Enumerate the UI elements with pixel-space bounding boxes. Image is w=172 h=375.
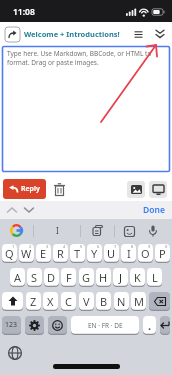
button[interactable]: Type here. Use Markdown, BBCode, or HTML… — [2, 46, 170, 172]
staticText: Reply — [21, 184, 40, 194]
staticText: Type here. Use Markdown, BBCode, or HTML… — [7, 49, 166, 67]
button[interactable]: J — [113, 268, 128, 287]
staticText: H — [99, 270, 108, 285]
staticText: F — [66, 270, 72, 285]
staticText: 7 — [114, 244, 117, 249]
staticText: U — [107, 246, 116, 261]
button[interactable] — [48, 316, 67, 335]
staticText: 3 — [46, 244, 49, 249]
button[interactable]: E — [36, 244, 51, 263]
staticText: T — [74, 246, 81, 261]
staticText: EN · FR · DE — [88, 321, 123, 330]
staticText: P — [159, 246, 166, 261]
button[interactable] — [54, 183, 65, 196]
button[interactable]: C — [61, 292, 76, 311]
button[interactable]: R — [53, 244, 68, 263]
button[interactable] — [24, 206, 34, 214]
staticText: Q — [5, 246, 14, 261]
staticText: N — [117, 294, 126, 309]
button[interactable]: Done — [143, 204, 172, 216]
button[interactable] — [149, 225, 157, 237]
staticText: G — [82, 270, 91, 285]
staticText: E — [40, 246, 47, 261]
staticText: 4 — [63, 244, 66, 249]
staticText: 2 — [29, 244, 32, 249]
button[interactable] — [25, 316, 44, 335]
button[interactable]: Welcome + Introductions! — [24, 29, 120, 39]
button[interactable] — [134, 30, 143, 39]
button[interactable] — [8, 346, 22, 360]
button[interactable]: I — [121, 244, 136, 263]
button[interactable]: W — [19, 244, 34, 263]
button[interactable]: P — [155, 244, 170, 263]
button[interactable]: B — [96, 292, 111, 311]
button[interactable]: EN · FR · DE — [71, 316, 139, 335]
button[interactable]: I — [34, 219, 80, 242]
button[interactable]: F — [61, 268, 76, 287]
button[interactable]: M — [131, 292, 146, 311]
button[interactable]: S — [27, 268, 42, 287]
button[interactable]: U — [104, 244, 119, 263]
button[interactable] — [149, 292, 170, 311]
button[interactable]: G — [79, 268, 94, 287]
button[interactable]: T — [70, 244, 85, 263]
button[interactable]: A — [10, 268, 25, 287]
staticText: 0 — [165, 244, 168, 249]
staticText: 5 — [80, 244, 83, 249]
button[interactable] — [7, 206, 17, 214]
staticText: 123 — [5, 320, 18, 330]
staticText: Done — [143, 204, 165, 216]
button[interactable] — [155, 29, 165, 39]
button[interactable] — [5, 27, 20, 42]
staticText: W — [21, 246, 32, 261]
button[interactable] — [160, 316, 170, 335]
button[interactable]: K — [130, 268, 145, 287]
staticText: B — [100, 294, 108, 309]
button[interactable] — [0, 219, 33, 242]
staticText: L — [152, 270, 158, 285]
button[interactable] — [149, 181, 167, 198]
staticText: S — [31, 270, 38, 285]
button[interactable]: V — [79, 292, 94, 311]
staticText: I — [127, 246, 131, 261]
button[interactable]: 123 — [2, 316, 21, 335]
button[interactable] — [127, 181, 145, 198]
staticText: I — [56, 225, 59, 236]
staticText: O — [141, 246, 150, 261]
staticText: K — [134, 270, 141, 285]
staticText: V — [83, 294, 90, 309]
staticText: 11:08 — [13, 6, 35, 18]
button[interactable]: O — [138, 244, 153, 263]
button[interactable]: N — [114, 292, 129, 311]
staticText: 8 — [131, 244, 134, 249]
staticText: Y — [91, 246, 98, 261]
button[interactable]: Y — [87, 244, 102, 263]
staticText: R — [57, 246, 64, 261]
button[interactable]: Reply — [3, 179, 46, 199]
staticText: J — [119, 270, 123, 285]
staticText: X — [47, 294, 54, 309]
button[interactable]: Q — [2, 244, 17, 263]
staticText: . — [148, 318, 152, 333]
button[interactable]: L — [147, 268, 162, 287]
staticText: D — [47, 270, 56, 285]
button[interactable]: D — [44, 268, 59, 287]
button[interactable]: X — [43, 292, 58, 311]
button[interactable] — [2, 292, 23, 311]
staticText: Z — [30, 294, 37, 309]
button[interactable]: H — [96, 268, 111, 287]
button[interactable]: Z — [26, 292, 41, 311]
staticText: 6 — [97, 244, 100, 249]
staticText: M — [134, 294, 144, 309]
button[interactable] — [81, 219, 114, 242]
staticText: A — [14, 270, 22, 285]
button[interactable] — [124, 226, 135, 237]
button[interactable]: . — [143, 316, 156, 335]
staticText: 9 — [148, 244, 151, 249]
staticText: C — [65, 294, 72, 309]
staticText: 1 — [12, 244, 15, 249]
